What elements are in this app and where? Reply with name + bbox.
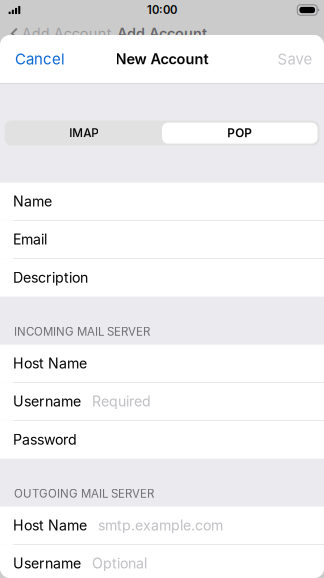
staticText: New Account — [115, 50, 208, 68]
button[interactable]: Host Name — [0, 345, 324, 383]
staticText: Add Account — [117, 25, 207, 42]
staticText: Name — [13, 193, 52, 210]
staticText: Username — [13, 555, 81, 572]
staticText: smtp.example.com — [98, 517, 223, 534]
button[interactable]: Cancel — [0, 35, 77, 83]
staticText: Email — [13, 231, 47, 248]
staticText: Description — [13, 269, 88, 286]
button[interactable]: IMAP — [6, 123, 162, 144]
staticText: 10:00 — [147, 3, 177, 17]
staticText: Host Name — [13, 355, 87, 372]
button[interactable]: Password — [0, 421, 324, 459]
staticText: Save — [277, 50, 312, 68]
staticText: Cancel — [15, 50, 65, 68]
staticText: Required — [92, 393, 151, 410]
staticText: OUTGOING MAIL SERVER — [14, 487, 154, 501]
staticText: Username — [13, 393, 81, 410]
staticText: Optional — [92, 555, 147, 572]
button[interactable]: Username — [0, 545, 324, 578]
staticText: Add Account — [22, 25, 112, 42]
button[interactable]: POP — [162, 123, 317, 144]
button[interactable]: Username — [0, 383, 324, 421]
staticText: Password — [13, 431, 77, 448]
button[interactable]: Host Name — [0, 507, 324, 545]
button[interactable]: Save — [265, 35, 324, 83]
staticText: IMAP — [69, 126, 99, 140]
button[interactable]: Name — [0, 183, 324, 221]
staticText: INCOMING MAIL SERVER — [14, 325, 150, 339]
staticText: Host Name — [13, 517, 87, 534]
button[interactable]: Email — [0, 221, 324, 259]
button[interactable]: Description — [0, 259, 324, 297]
staticText: POP — [227, 126, 252, 140]
